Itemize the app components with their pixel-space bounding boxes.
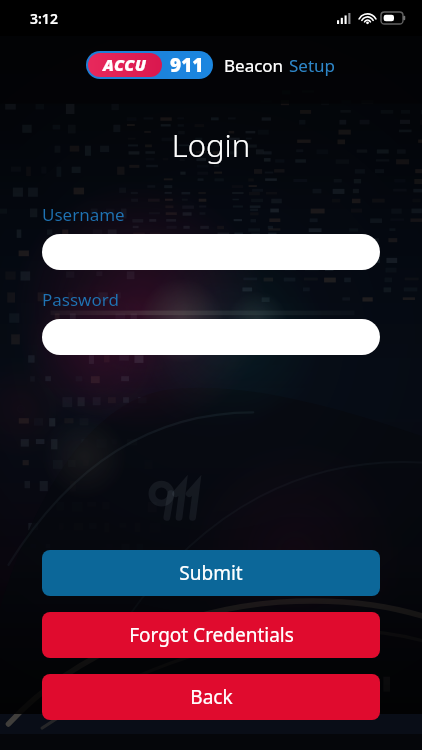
staticText: Back [190,684,233,710]
button[interactable] [42,319,380,355]
staticText: Setup [289,54,336,77]
button[interactable]: ACCU [86,51,336,79]
staticText: 3:12 [30,9,58,28]
staticText: Login [0,124,422,166]
staticText: ACCU [103,54,147,76]
button[interactable] [42,234,380,270]
button[interactable]: Back [42,674,380,720]
staticText: 911 [170,52,204,78]
staticText: Password [42,288,119,311]
staticText: Beacon [224,54,284,77]
staticText: Submit [179,560,243,586]
staticText: Forgot Credentials [129,622,294,648]
button[interactable]: Submit [42,550,380,596]
staticText: Username [42,203,125,226]
button[interactable]: Forgot Credentials [42,612,380,658]
